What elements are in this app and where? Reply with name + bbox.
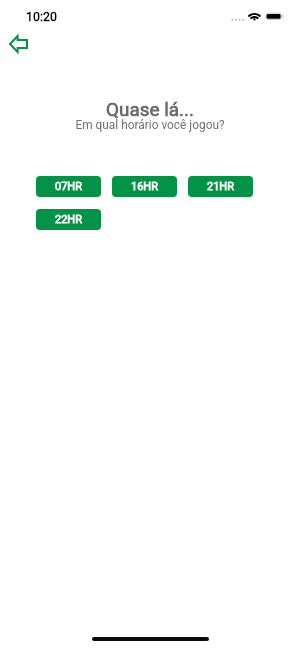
button[interactable]: 21HR <box>188 176 253 197</box>
button[interactable]: 16HR <box>112 176 177 197</box>
button[interactable]: 07HR <box>36 176 101 197</box>
button[interactable]: 22HR <box>36 209 101 230</box>
staticText: 22HR <box>55 213 82 226</box>
staticText: 10:20 <box>26 9 57 24</box>
staticText: 07HR <box>55 180 82 193</box>
staticText: 16HR <box>131 180 158 193</box>
staticText: Quase lá... <box>0 98 300 120</box>
staticText: 21HR <box>207 180 234 193</box>
staticText: Em qual horário você jogou? <box>0 118 300 132</box>
button[interactable]: Back <box>3 29 33 59</box>
